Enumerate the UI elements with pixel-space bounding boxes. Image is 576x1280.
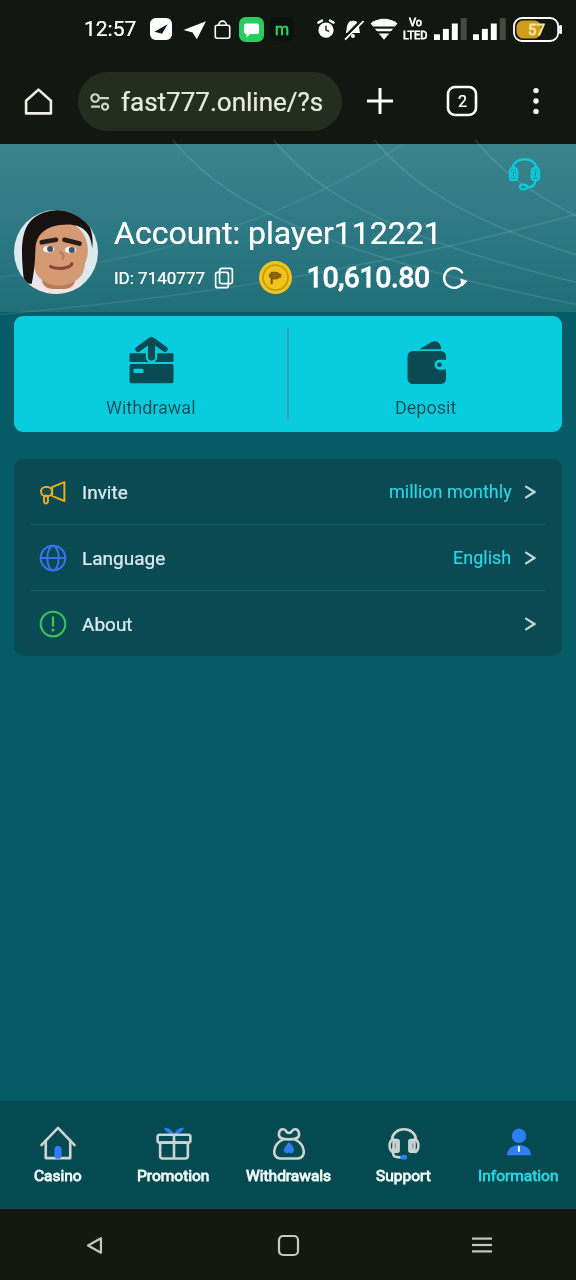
staticText: Casino — [34, 1167, 82, 1185]
staticText: Information — [478, 1167, 559, 1185]
button[interactable]: Information — [461, 1101, 576, 1209]
staticText: ₱ — [269, 268, 282, 288]
button[interactable]: Language — [14, 525, 562, 590]
button[interactable]: Recent apps — [458, 1221, 506, 1269]
button[interactable]: More options — [512, 77, 560, 125]
button[interactable]: Casino — [0, 1101, 116, 1209]
staticText: Support — [376, 1167, 431, 1185]
staticText: 2 — [458, 92, 467, 111]
staticText: Promotion — [137, 1167, 210, 1185]
button[interactable]: Home — [14, 77, 62, 125]
button[interactable]: Tabs — [438, 77, 486, 125]
staticText: million monthly — [389, 481, 512, 502]
button[interactable]: Withdrawals — [231, 1101, 346, 1209]
staticText: m — [275, 20, 290, 39]
button[interactable]: Promotion — [116, 1101, 231, 1209]
button[interactable]: Deposit — [289, 316, 562, 432]
staticText: Invite — [82, 481, 128, 503]
staticText: Deposit — [395, 397, 457, 418]
button[interactable]: Customer support — [504, 154, 544, 194]
button[interactable]: Refresh balance — [441, 265, 467, 291]
staticText: Account: player112221 — [114, 214, 442, 252]
staticText: English — [453, 547, 512, 568]
button[interactable]: Home — [264, 1221, 312, 1269]
staticText: 10,610.80 — [307, 261, 431, 294]
button[interactable]: About — [14, 591, 562, 656]
button[interactable]: fast777.online/?s — [78, 72, 342, 131]
button[interactable]: Profile avatar — [14, 210, 98, 294]
staticText: 12:57 — [84, 17, 137, 42]
staticText: 57 — [528, 21, 545, 39]
staticText: LTED — [403, 29, 428, 42]
button[interactable]: Back — [70, 1221, 118, 1269]
staticText: Language — [82, 547, 166, 569]
staticText: About — [82, 613, 133, 635]
button[interactable]: Support — [346, 1101, 461, 1209]
button[interactable]: New tab — [356, 77, 404, 125]
staticText: Vo — [409, 16, 423, 29]
button[interactable]: Copy ID — [213, 267, 235, 289]
staticText: ID: 7140777 — [114, 268, 205, 288]
staticText: Withdrawals — [246, 1167, 332, 1185]
button[interactable]: Withdrawal — [14, 316, 287, 432]
button[interactable]: Invite — [14, 459, 562, 524]
staticText: Withdrawal — [106, 397, 196, 418]
staticText: fast777.online/?s — [121, 87, 324, 117]
